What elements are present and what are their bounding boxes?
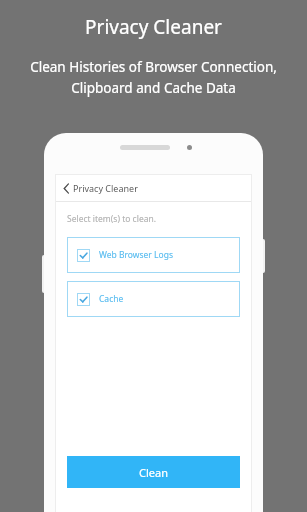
staticText: Web Browser Logs	[99, 249, 173, 261]
staticText: Privacy Cleaner	[85, 14, 222, 40]
staticText: Privacy Cleaner	[73, 182, 138, 194]
button[interactable]: Web Browser Logs	[67, 237, 240, 273]
staticText: Select item(s) to clean.	[67, 213, 156, 225]
button[interactable]: Clean	[67, 456, 240, 488]
button[interactable]: Privacy Cleaner	[55, 174, 252, 201]
button[interactable]: Cache	[67, 281, 240, 317]
staticText: Clean	[139, 465, 168, 480]
staticText: Clean Histories of Browser Connection, C…	[30, 58, 277, 97]
staticText: Cache	[99, 293, 124, 305]
